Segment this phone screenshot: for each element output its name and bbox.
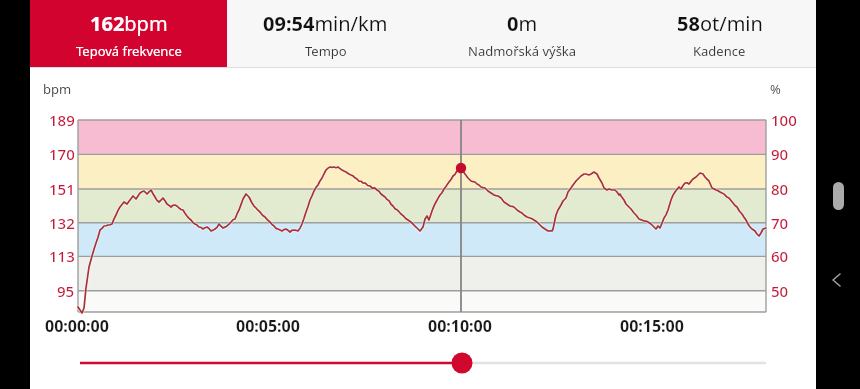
staticText: 50 bbox=[771, 281, 789, 301]
staticText: 00:05:00 bbox=[236, 315, 300, 337]
staticText: 90 bbox=[771, 144, 789, 164]
staticText: Nadmořská výška bbox=[468, 42, 577, 60]
button[interactable]: 58ot/min bbox=[621, 0, 818, 67]
button[interactable]: 0m bbox=[424, 0, 621, 67]
staticText: Tepová frekvence bbox=[76, 42, 182, 60]
staticText: Kadence bbox=[693, 42, 746, 60]
staticText: % bbox=[770, 80, 781, 98]
staticText: 162bpm bbox=[90, 10, 168, 37]
staticText: 0m bbox=[507, 10, 538, 37]
staticText: 70 bbox=[771, 213, 789, 233]
staticText: 151 bbox=[49, 179, 75, 199]
staticText: 132 bbox=[49, 213, 75, 233]
button[interactable]: 162bpm bbox=[30, 0, 227, 67]
staticText: 58ot/min bbox=[677, 10, 763, 37]
staticText: bpm bbox=[43, 80, 72, 98]
staticText: 00:10:00 bbox=[428, 315, 492, 337]
button[interactable] bbox=[822, 266, 850, 294]
staticText: 189 bbox=[49, 110, 75, 130]
staticText: 00:00:00 bbox=[45, 315, 109, 337]
staticText: 80 bbox=[771, 179, 789, 199]
staticText: 00:15:00 bbox=[620, 315, 684, 337]
staticText: 100 bbox=[771, 110, 797, 130]
staticText: 60 bbox=[771, 246, 789, 266]
staticText: 95 bbox=[57, 281, 75, 301]
staticText: 09:54min/km bbox=[263, 10, 388, 37]
staticText: Tempo bbox=[305, 42, 347, 60]
button[interactable] bbox=[450, 351, 474, 375]
staticText: 113 bbox=[49, 246, 75, 266]
staticText: 170 bbox=[49, 144, 75, 164]
button[interactable]: 09:54min/km bbox=[227, 0, 424, 67]
